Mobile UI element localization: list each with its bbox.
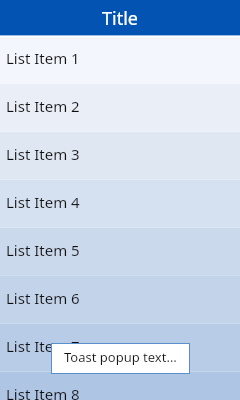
staticText: List Item 3 xyxy=(6,144,80,164)
staticText: List Item 1 xyxy=(6,48,80,68)
button[interactable]: List Item 6 xyxy=(0,276,240,323)
button[interactable]: List Item 1 xyxy=(0,37,240,83)
button[interactable]: List Item 7 xyxy=(0,324,240,371)
staticText: Title xyxy=(102,6,138,31)
staticText: List Item 7 xyxy=(6,336,80,356)
button[interactable]: List Item 2 xyxy=(0,84,240,131)
staticText: Toast popup text… xyxy=(64,348,177,366)
button[interactable]: List Item 8 xyxy=(0,372,240,400)
button[interactable]: List Item 5 xyxy=(0,228,240,275)
button[interactable]: Title xyxy=(0,0,240,35)
staticText: List Item 8 xyxy=(6,384,80,400)
staticText: List Item 6 xyxy=(6,288,80,308)
button[interactable]: List Item 3 xyxy=(0,132,240,179)
staticText: List Item 4 xyxy=(6,192,80,212)
button[interactable]: Toast popup text xyxy=(51,343,190,374)
staticText: List Item 2 xyxy=(6,96,80,116)
button[interactable]: List Item 4 xyxy=(0,180,240,227)
staticText: List Item 5 xyxy=(6,240,80,260)
